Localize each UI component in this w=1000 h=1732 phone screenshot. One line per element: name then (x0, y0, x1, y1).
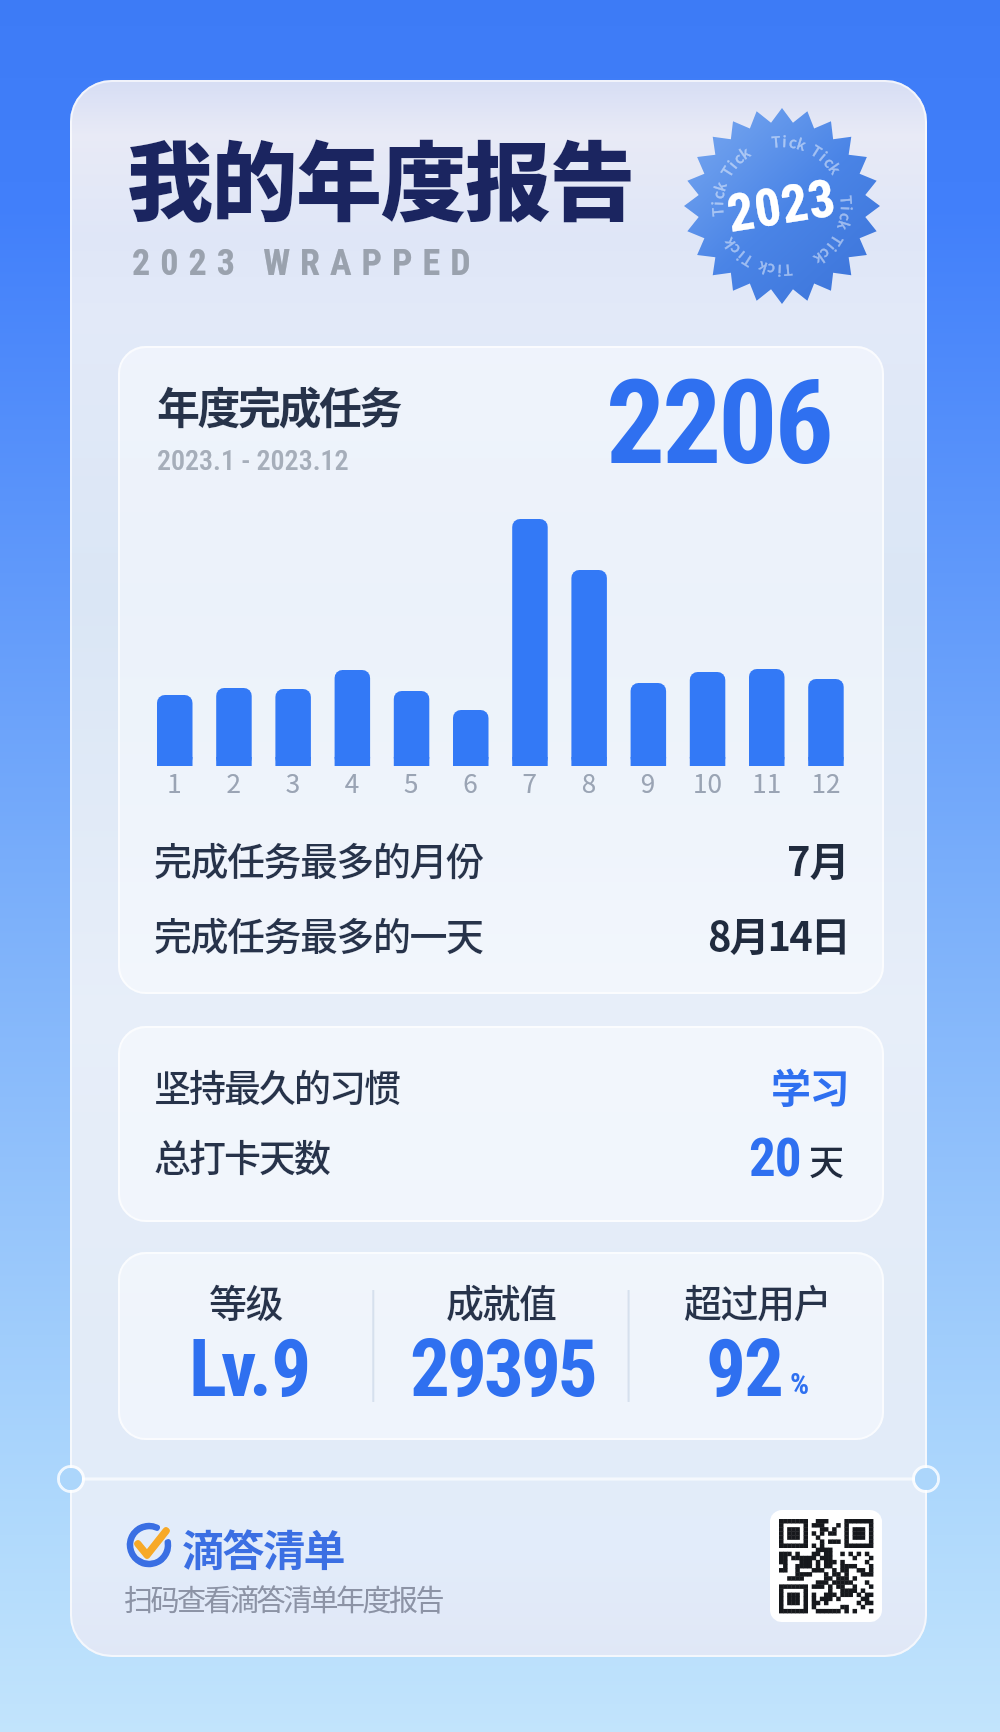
staticText: 我的年度报告 (127, 114, 634, 239)
button[interactable] (120, 1516, 180, 1576)
staticText: 学习 (771, 1057, 848, 1115)
staticText: 超过用户 (684, 1273, 831, 1328)
staticText: % (790, 1366, 810, 1401)
staticText: 总打卡天数 (154, 1129, 329, 1183)
staticText: Lv.9 (189, 1323, 311, 1416)
staticText: 完成任务最多的一天 (154, 906, 483, 961)
staticText: 坚持最久的习惯 (154, 1059, 399, 1113)
button[interactable] (118, 346, 884, 994)
button[interactable] (672, 95, 892, 315)
button[interactable] (118, 1252, 884, 1440)
staticText: 20 (749, 1127, 801, 1189)
staticText: 2023 WRAPPED (132, 242, 481, 284)
staticText: 等级 (209, 1273, 283, 1328)
staticText: 2023.1 - 2023.12 (157, 444, 349, 477)
staticText: 2206 (606, 354, 831, 491)
staticText: 7月 (787, 830, 849, 888)
button[interactable] (118, 1026, 884, 1222)
staticText: 滴答清单 (182, 1517, 345, 1578)
button[interactable] (770, 1510, 882, 1622)
staticText: 29395 (410, 1323, 595, 1416)
staticText: 年度完成任务 (157, 374, 400, 436)
staticText: 8月14日 (708, 905, 849, 963)
staticText: 成就值 (446, 1273, 556, 1328)
staticText: 完成任务最多的月份 (154, 831, 483, 886)
staticText: 扫码查看滴答清单年度报告 (124, 1577, 443, 1619)
staticText: 92 (706, 1323, 782, 1416)
staticText: 天 (809, 1134, 845, 1185)
